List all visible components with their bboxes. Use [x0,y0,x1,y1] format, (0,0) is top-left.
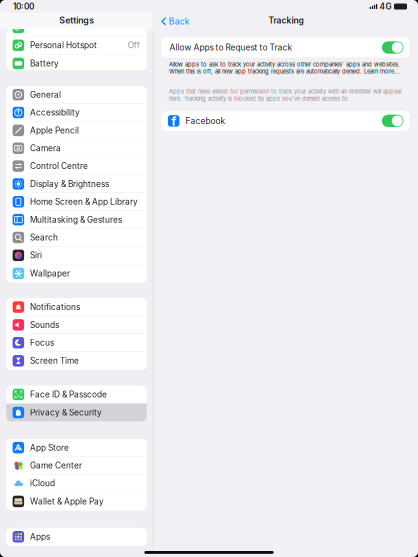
staticText: Siri [30,250,42,260]
staticText: Facebook [185,116,225,126]
staticText: Privacy & Security [30,407,102,417]
staticText: App Store [30,443,69,453]
button[interactable]: Sounds [6,316,147,334]
button[interactable]: Wallet & Apple Pay [6,492,147,510]
staticText: Multitasking & Gestures [30,215,122,225]
button[interactable]: Notifications [6,298,147,316]
staticText: Apple Pencil [30,125,79,135]
button[interactable]: Focus [6,334,147,352]
button[interactable]: Game Center [6,457,147,475]
staticText: Battery [30,58,59,68]
button[interactable]: Siri [6,247,147,264]
button[interactable]: Screen Time [6,352,147,370]
button[interactable]: Back [154,16,196,29]
button[interactable]: Face ID & Passcode [6,386,147,404]
button[interactable]: Personal Hotspot [6,37,147,55]
button[interactable]: Multitasking & Gestures [6,211,147,229]
button[interactable]: Camera [6,140,147,157]
button[interactable]: Apple Pencil [6,122,147,140]
button[interactable]: Search [6,229,147,247]
staticText: Focus [30,338,54,348]
button[interactable]: Wallpaper [6,264,147,282]
button[interactable]: Battery [6,54,147,72]
staticText: Tracking [268,15,303,26]
button[interactable]: Accessibility [6,104,147,122]
button[interactable]: App Store [6,439,147,457]
button[interactable]: Home Screen & App Library [6,193,147,211]
staticText: Game Center [30,460,82,470]
staticText: Apps that have asked for permission to t… [169,88,402,102]
staticText: Control Centre [30,161,88,171]
button[interactable]: General [6,86,147,104]
staticText: Apps [30,532,50,542]
button[interactable]: Apps [6,528,147,546]
staticText: iCloud [30,478,55,488]
staticText: Display & Brightness [30,179,109,189]
staticText: Notifications [30,302,80,312]
staticText: 10:00 [13,1,34,11]
staticText: Allow apps to ask to track your activity… [169,61,400,75]
button[interactable]: Privacy & Security [6,404,147,421]
staticText: Accessibility [30,107,80,117]
staticText: Back [169,16,190,26]
staticText: f [171,113,176,129]
staticText: Screen Time [30,356,79,366]
button[interactable]: Display & Brightness [6,175,147,193]
staticText: Allow Apps to Request to Track [169,42,292,53]
staticText: Settings [59,15,94,25]
button[interactable]: f [154,102,418,131]
button[interactable]: Control Centre [6,157,147,175]
staticText: Sounds [30,320,59,330]
staticText: Home Screen & App Library [30,197,138,207]
staticText: Personal Hotspot [30,40,97,50]
staticText: Wallet & Apple Pay [30,496,104,506]
staticText: Off [128,40,140,50]
staticText: General [30,90,61,100]
staticText: Wallpaper [30,268,70,278]
button[interactable]: Allow Apps to Request to Track [154,29,418,57]
staticText: Search [30,232,58,242]
staticText: Face ID & Passcode [30,389,107,399]
staticText: Camera [30,143,61,153]
button[interactable]: iCloud [6,475,147,492]
staticText: 4G [379,1,391,11]
